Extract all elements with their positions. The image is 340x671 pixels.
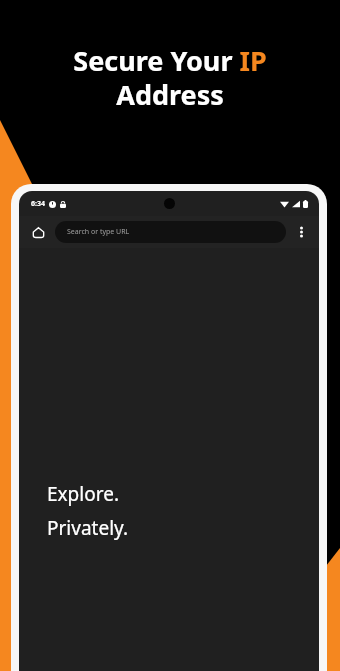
staticText: Explore. <box>47 481 119 507</box>
staticText: 6:34 <box>31 199 45 209</box>
staticText: Secure Your IP Address <box>73 42 267 113</box>
button[interactable]: Home <box>28 222 48 242</box>
staticText: Search or type URL <box>67 227 130 237</box>
staticText: Privately. <box>47 515 129 541</box>
button[interactable]: More options <box>292 223 310 241</box>
button[interactable]: Search or type URL <box>55 221 286 243</box>
